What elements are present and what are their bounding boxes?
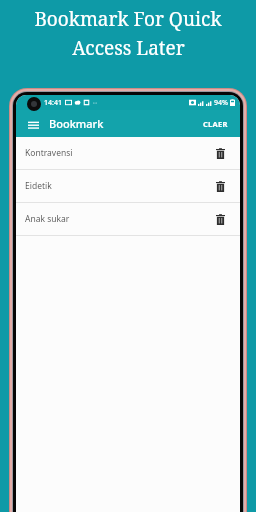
staticText: Anak sukar xyxy=(25,213,70,225)
staticText: Access Later xyxy=(72,35,185,61)
staticText: 94% xyxy=(214,98,228,108)
staticText: CLAER xyxy=(203,119,228,129)
button[interactable]: Delete Kontravensi xyxy=(212,145,229,162)
staticText: 14:41 xyxy=(44,98,62,108)
button[interactable]: Open navigation menu xyxy=(24,115,42,133)
button[interactable]: Kontravensi xyxy=(16,137,240,169)
button[interactable]: Anak sukar xyxy=(16,203,240,235)
button[interactable]: Eidetik xyxy=(16,170,240,202)
staticText: Eidetik xyxy=(25,180,52,192)
button[interactable]: CLAER xyxy=(200,115,231,133)
staticText: Bookmark For Quick xyxy=(34,6,222,32)
button[interactable]: Delete Anak sukar xyxy=(212,211,229,228)
button[interactable]: Delete Eidetik xyxy=(212,178,229,195)
staticText: Kontravensi xyxy=(25,147,73,159)
staticText: Bookmark xyxy=(49,116,104,131)
